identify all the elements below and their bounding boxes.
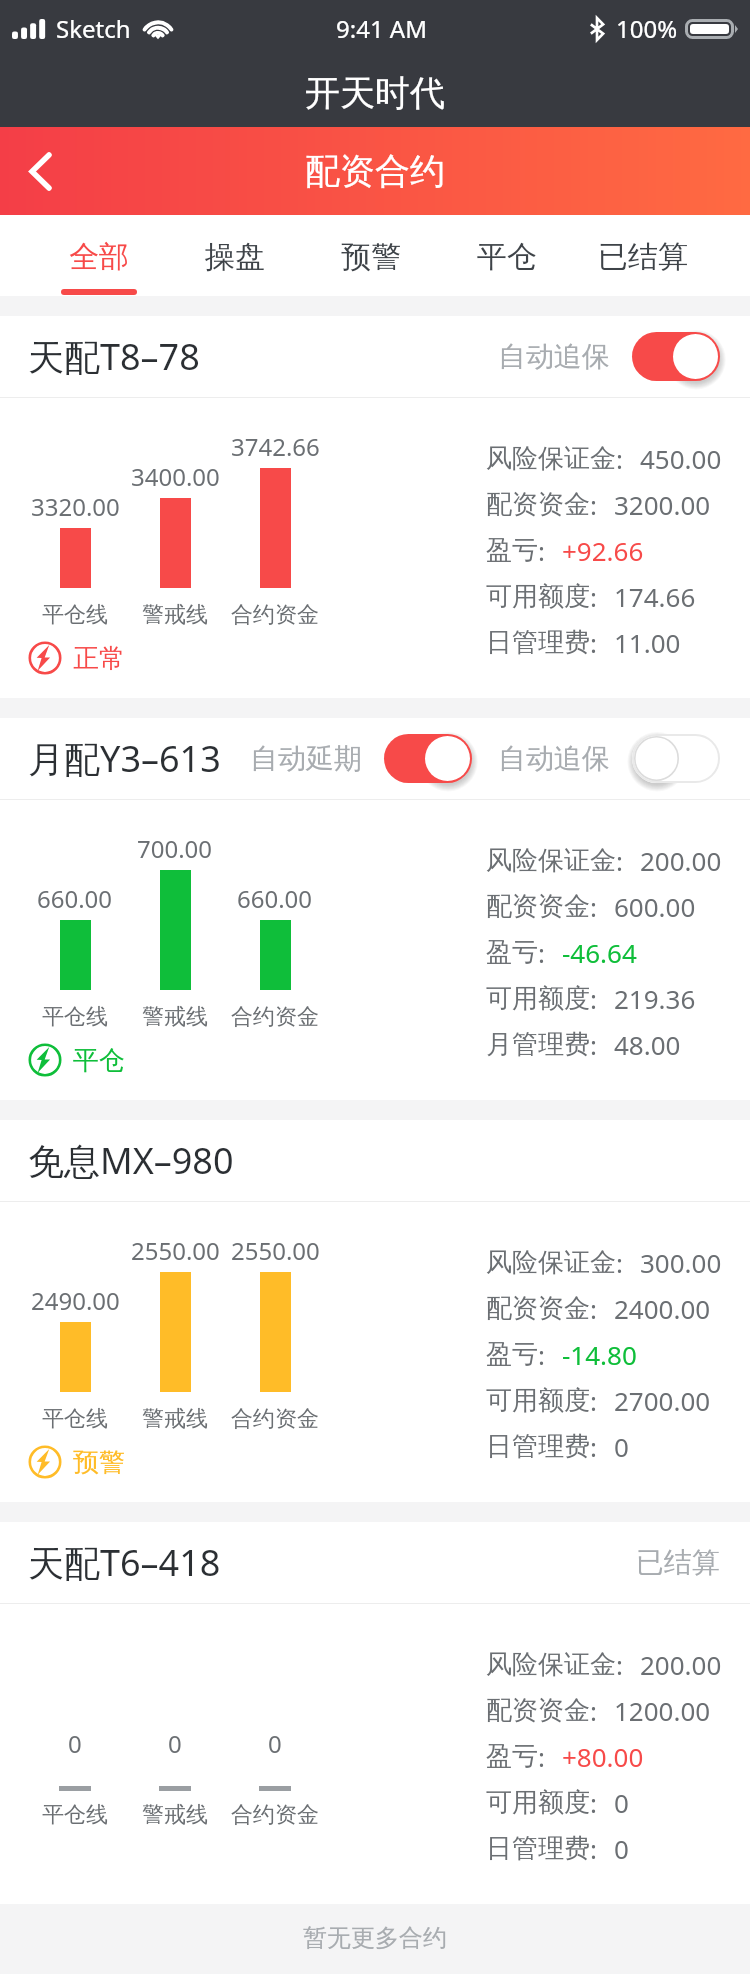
staticText: : [590, 981, 597, 1016]
staticText: 3400.00 [131, 460, 220, 493]
button[interactable]: 平仓 [439, 215, 575, 296]
button[interactable]: 返回 [0, 131, 80, 211]
staticText: 700.00 [137, 832, 213, 865]
staticText: : [590, 1831, 597, 1866]
staticText: : [616, 441, 623, 476]
staticText: 660.00 [237, 882, 313, 915]
staticText: 配资合约 [305, 149, 445, 193]
staticText: 天配T6–418 [28, 1538, 221, 1587]
staticText: 200.00 [640, 1647, 722, 1682]
staticText: 平仓 [477, 238, 537, 276]
staticText: 2550.00 [231, 1234, 320, 1267]
button[interactable]: 天配T6–418 [0, 1522, 750, 1603]
staticText: 3320.00 [31, 490, 120, 523]
staticText: : [590, 1291, 597, 1326]
staticText: 合约资金 [231, 1405, 319, 1433]
staticText: 3200.00 [614, 487, 711, 522]
staticText: 可用额度 [486, 580, 590, 613]
staticText: 600.00 [614, 889, 696, 924]
button[interactable]: 自动追保 [632, 734, 720, 783]
staticText: : [538, 1739, 545, 1774]
staticText: 日管理费 [486, 1430, 590, 1463]
staticText: 已结算 [598, 238, 688, 276]
staticText: 自动追保 [498, 741, 610, 776]
staticText: 219.36 [614, 981, 696, 1016]
staticText: 日管理费 [486, 626, 590, 659]
staticText: 100% [616, 12, 678, 45]
button[interactable]: 全部 [31, 215, 167, 296]
staticText: 平仓 [73, 1044, 125, 1077]
staticText: 日管理费 [486, 1832, 590, 1865]
staticText: +80.00 [562, 1739, 644, 1774]
staticText: 48.00 [614, 1027, 681, 1062]
staticText: 可用额度 [486, 982, 590, 1015]
staticText: 可用额度 [486, 1786, 590, 1819]
staticText: 月配Y3–613 [28, 734, 221, 783]
staticText: 警戒线 [142, 1003, 208, 1031]
staticText: 平仓线 [42, 1801, 108, 1829]
staticText: 全部 [69, 238, 129, 276]
staticText: 盈亏 [486, 936, 538, 969]
staticText: 警戒线 [142, 1405, 208, 1433]
staticText: 合约资金 [231, 1003, 319, 1031]
staticText: 3742.66 [231, 430, 320, 463]
staticText: 风险保证金 [486, 1246, 616, 1279]
staticText: 预警 [341, 238, 401, 276]
staticText: : [616, 1245, 623, 1280]
staticText: 配资资金 [486, 890, 590, 923]
button[interactable]: 已结算 [575, 215, 711, 296]
button[interactable]: 天配T8–78 [0, 316, 750, 397]
staticText: 配资资金 [486, 488, 590, 521]
staticText: 0 [168, 1727, 182, 1760]
staticText: 自动追保 [498, 339, 610, 374]
staticText: 平仓线 [42, 1405, 108, 1433]
staticText: 450.00 [640, 441, 722, 476]
staticText: 警戒线 [142, 1801, 208, 1829]
staticText: 开天时代 [305, 71, 445, 115]
staticText: 预警 [73, 1446, 125, 1479]
staticText: : [590, 625, 597, 660]
staticText: 2700.00 [614, 1383, 711, 1418]
button[interactable]: 预警 [303, 215, 439, 296]
staticText: 暂无更多合约 [303, 1923, 447, 1953]
staticText: 盈亏 [486, 1740, 538, 1773]
staticText: 配资资金 [486, 1694, 590, 1727]
staticText: 已结算 [636, 1545, 720, 1580]
staticText: 盈亏 [486, 1338, 538, 1371]
staticText: 平仓线 [42, 601, 108, 629]
button[interactable]: 月配Y3–613 [0, 718, 750, 799]
staticText: 200.00 [640, 843, 722, 878]
button[interactable]: 操盘 [167, 215, 303, 296]
staticText: 风险保证金 [486, 442, 616, 475]
staticText: : [538, 935, 545, 970]
staticText: : [616, 843, 623, 878]
staticText: 0 [614, 1429, 629, 1464]
staticText: 平仓线 [42, 1003, 108, 1031]
staticText: : [590, 1693, 597, 1728]
staticText: Sketch [56, 12, 131, 45]
staticText: +92.66 [562, 533, 644, 568]
button[interactable]: 自动追保 [632, 332, 720, 381]
staticText: : [538, 533, 545, 568]
staticText: 11.00 [614, 625, 681, 660]
staticText: 9:41 AM [336, 12, 427, 45]
staticText: 警戒线 [142, 601, 208, 629]
staticText: 0 [268, 1727, 282, 1760]
staticText: : [590, 1027, 597, 1062]
staticText: 操盘 [205, 238, 265, 276]
button[interactable]: 免息MX–980 [0, 1120, 750, 1201]
staticText: 月管理费 [486, 1028, 590, 1061]
staticText: 2550.00 [131, 1234, 220, 1267]
staticText: 自动延期 [250, 741, 362, 776]
staticText: -14.80 [562, 1337, 637, 1372]
staticText: 合约资金 [231, 601, 319, 629]
button[interactable]: 自动延期 [384, 734, 472, 783]
staticText: 盈亏 [486, 534, 538, 567]
staticText: -46.64 [562, 935, 637, 970]
staticText: 0 [68, 1727, 82, 1760]
staticText: 合约资金 [231, 1801, 319, 1829]
staticText: 正常 [73, 642, 125, 675]
staticText: : [616, 1647, 623, 1682]
staticText: 0 [614, 1831, 629, 1866]
staticText: : [590, 487, 597, 522]
